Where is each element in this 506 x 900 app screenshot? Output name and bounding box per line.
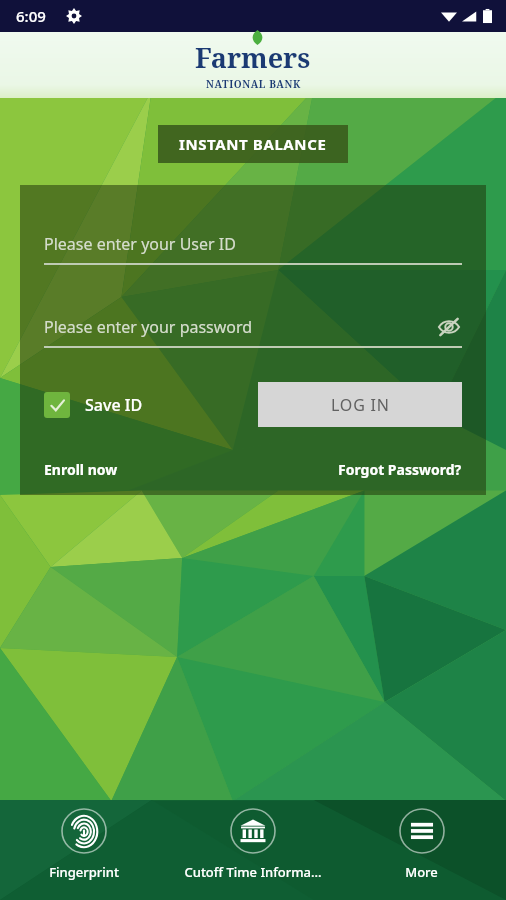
staticText: Save ID <box>85 394 143 416</box>
button[interactable]: More <box>337 808 506 881</box>
button[interactable]: Please enter your User ID <box>44 233 462 265</box>
button[interactable]: Cutoff Time Information <box>168 808 337 881</box>
button[interactable]: INSTANT BALANCE <box>158 125 348 163</box>
other: More <box>410 819 434 843</box>
button[interactable]: Save ID <box>44 392 143 418</box>
staticText: 6:09 <box>16 6 46 26</box>
staticText: Forgot Password? <box>338 460 462 479</box>
staticText: Please enter your password <box>44 316 436 338</box>
staticText: INSTANT BALANCE <box>179 134 327 154</box>
button[interactable]: LOG IN <box>258 382 462 427</box>
staticText: Enroll now <box>44 460 118 479</box>
staticText: Cutoff Time Informa… <box>184 863 322 881</box>
other: Fingerprint <box>70 817 98 845</box>
button[interactable]: Enroll now <box>44 460 118 479</box>
button[interactable]: Show password <box>436 314 462 340</box>
staticText: More <box>405 863 438 881</box>
button[interactable]: Forgot Password? <box>338 460 462 479</box>
other: Cutoff Time Information <box>240 818 266 844</box>
staticText: Please enter your User ID <box>44 233 236 255</box>
staticText: Farmers <box>195 39 311 76</box>
button[interactable]: Fingerprint <box>0 808 168 881</box>
button[interactable]: Please enter your password <box>44 314 462 348</box>
other: Settings <box>66 8 82 24</box>
staticText: LOG IN <box>331 394 390 416</box>
staticText: NATIONAL BANK <box>206 77 301 91</box>
staticText: Fingerprint <box>49 863 119 881</box>
